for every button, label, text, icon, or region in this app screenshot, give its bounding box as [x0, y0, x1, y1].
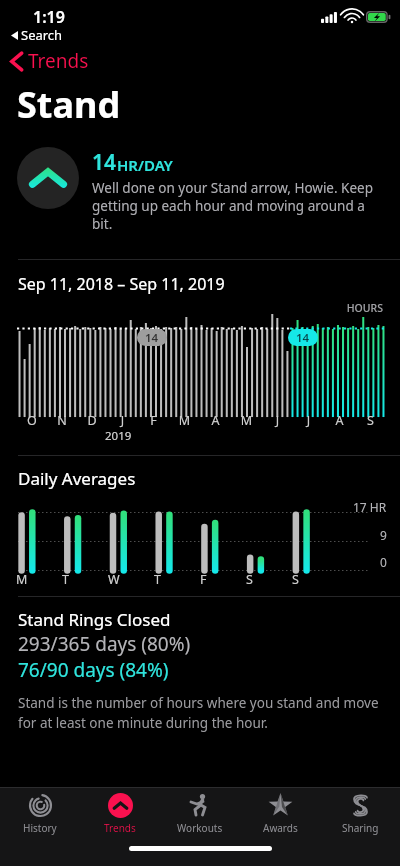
staticText: Trends: [28, 48, 89, 74]
staticText: Search: [21, 26, 63, 44]
staticText: M: [169, 412, 200, 429]
staticText: F: [200, 571, 246, 588]
other: Workouts: [188, 793, 213, 818]
staticText: A: [324, 412, 355, 429]
staticText: HR/DAY: [117, 155, 173, 175]
staticText: 0: [380, 554, 387, 570]
staticText: 9: [380, 527, 387, 543]
staticText: 14: [92, 148, 117, 177]
staticText: 1:19: [33, 6, 65, 28]
other: Sharing: [348, 793, 373, 818]
button[interactable]: Workouts: [160, 788, 240, 840]
staticText: Trends: [104, 821, 136, 835]
staticText: J: [293, 412, 324, 429]
button[interactable]: Sharing: [320, 788, 400, 840]
staticText: A: [200, 412, 231, 429]
staticText: D: [77, 412, 107, 429]
staticText: J: [262, 412, 293, 429]
staticText: F: [138, 412, 169, 429]
staticText: Sep 11, 2018 – Sep 11, 2019: [18, 273, 225, 295]
staticText: History: [23, 821, 57, 835]
staticText: W: [108, 571, 154, 588]
staticText: Awards: [263, 821, 298, 835]
staticText: S: [355, 412, 386, 429]
staticText: N: [47, 412, 77, 429]
staticText: Stand: [17, 80, 121, 129]
staticText: Sharing: [342, 821, 379, 835]
staticText: S: [246, 571, 292, 588]
staticText: 293/365 days (80%): [18, 631, 191, 657]
staticText: HOURS: [0, 301, 383, 315]
staticText: T: [154, 571, 200, 588]
other: Trends: [108, 793, 133, 818]
staticText: Workouts: [177, 821, 223, 835]
staticText: M: [16, 571, 62, 588]
button[interactable]: Trends: [80, 788, 160, 840]
staticText: Stand Rings Closed: [18, 608, 171, 631]
button[interactable]: History: [0, 788, 80, 840]
staticText: 17 HR: [353, 499, 387, 515]
other: History: [28, 793, 53, 818]
other: Awards: [268, 793, 293, 818]
button[interactable]: Awards: [240, 788, 320, 840]
staticText: 14: [296, 330, 310, 346]
staticText: Stand is the number of hours where you s…: [18, 694, 382, 732]
staticText: J: [107, 412, 138, 429]
staticText: S: [292, 571, 338, 588]
staticText: O: [17, 412, 47, 429]
staticText: Well done on your Stand arrow, Howie. Ke…: [92, 179, 386, 233]
staticText: 2019: [105, 428, 132, 444]
staticText: M: [231, 412, 262, 429]
button[interactable]: Trends: [0, 46, 103, 76]
staticText: 14: [145, 330, 159, 346]
staticText: 76/90 days (84%): [18, 657, 169, 683]
staticText: T: [62, 571, 108, 588]
staticText: Daily Averages: [18, 467, 136, 490]
